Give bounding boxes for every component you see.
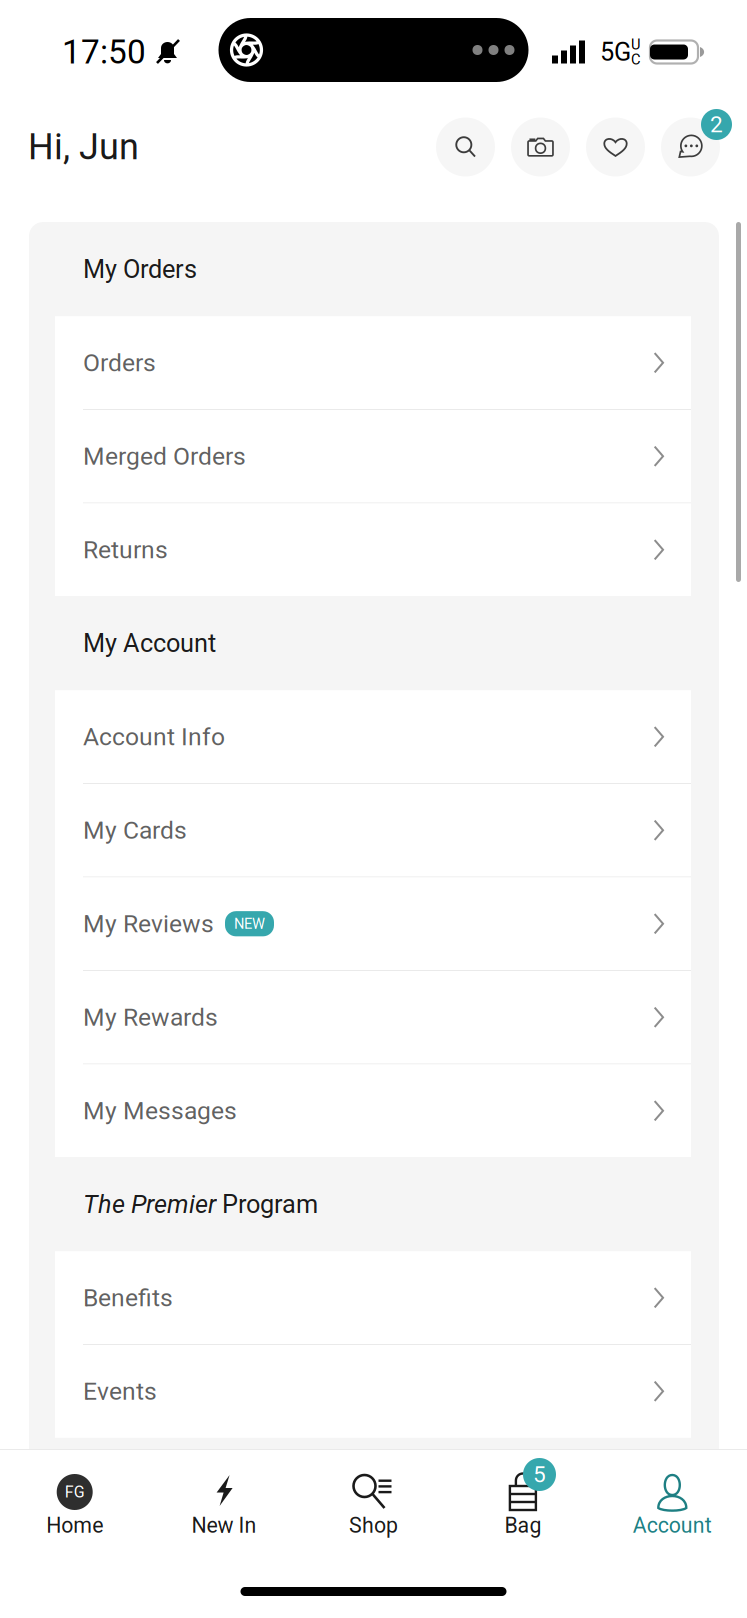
button[interactable]: Merged Orders bbox=[55, 410, 691, 502]
button[interactable]: FG bbox=[0, 1450, 149, 1568]
staticText: Bag bbox=[504, 1513, 541, 1538]
staticText: Benefits bbox=[83, 1283, 173, 1312]
staticText: U bbox=[631, 36, 641, 53]
staticText: The Premier bbox=[83, 1189, 216, 1219]
staticText: My Messages bbox=[83, 1096, 237, 1125]
staticText: Account Info bbox=[83, 722, 225, 751]
staticText: 5 bbox=[533, 1461, 546, 1488]
staticText: Orders bbox=[83, 348, 156, 377]
staticText: NEW bbox=[234, 915, 265, 932]
staticText: My Rewards bbox=[83, 1003, 218, 1032]
button[interactable]: Orders bbox=[55, 316, 691, 409]
button[interactable]: Shop bbox=[299, 1450, 448, 1568]
button[interactable]: New In bbox=[149, 1450, 299, 1568]
staticText: 5G bbox=[600, 37, 631, 67]
staticText: FG bbox=[65, 1483, 85, 1501]
staticText: Returns bbox=[83, 535, 168, 564]
staticText: Home bbox=[46, 1513, 103, 1538]
button[interactable]: Account bbox=[598, 1450, 747, 1568]
button[interactable]: Wishlist bbox=[586, 117, 645, 176]
staticText: My Account bbox=[83, 628, 216, 658]
staticText: My Orders bbox=[83, 254, 197, 284]
button[interactable]: My Cards bbox=[55, 784, 691, 876]
button[interactable]: Account Info bbox=[55, 690, 691, 783]
staticText: New In bbox=[192, 1513, 257, 1538]
button[interactable]: Events bbox=[55, 1345, 691, 1437]
staticText: 17:50 bbox=[62, 32, 146, 72]
button[interactable]: My Reviews bbox=[55, 877, 691, 970]
button[interactable]: Bag bbox=[448, 1450, 598, 1568]
staticText: Program bbox=[216, 1189, 318, 1219]
button[interactable]: Returns bbox=[55, 503, 691, 596]
staticText: C bbox=[631, 51, 641, 68]
staticText: Events bbox=[83, 1377, 157, 1406]
staticText: Merged Orders bbox=[83, 442, 246, 471]
staticText: Shop bbox=[349, 1513, 398, 1538]
button[interactable]: Benefits bbox=[55, 1251, 691, 1344]
button[interactable]: Messages bbox=[661, 117, 720, 176]
button[interactable]: Search bbox=[436, 117, 495, 176]
button[interactable]: My Messages bbox=[55, 1064, 691, 1157]
button[interactable]: Camera bbox=[511, 117, 570, 176]
staticText: Hi, Jun bbox=[28, 126, 139, 168]
staticText: 2 bbox=[710, 111, 723, 138]
staticText: Account bbox=[633, 1513, 712, 1538]
button[interactable]: My Rewards bbox=[55, 971, 691, 1063]
staticText: My Cards bbox=[83, 816, 187, 845]
staticText: My Reviews bbox=[83, 909, 214, 938]
